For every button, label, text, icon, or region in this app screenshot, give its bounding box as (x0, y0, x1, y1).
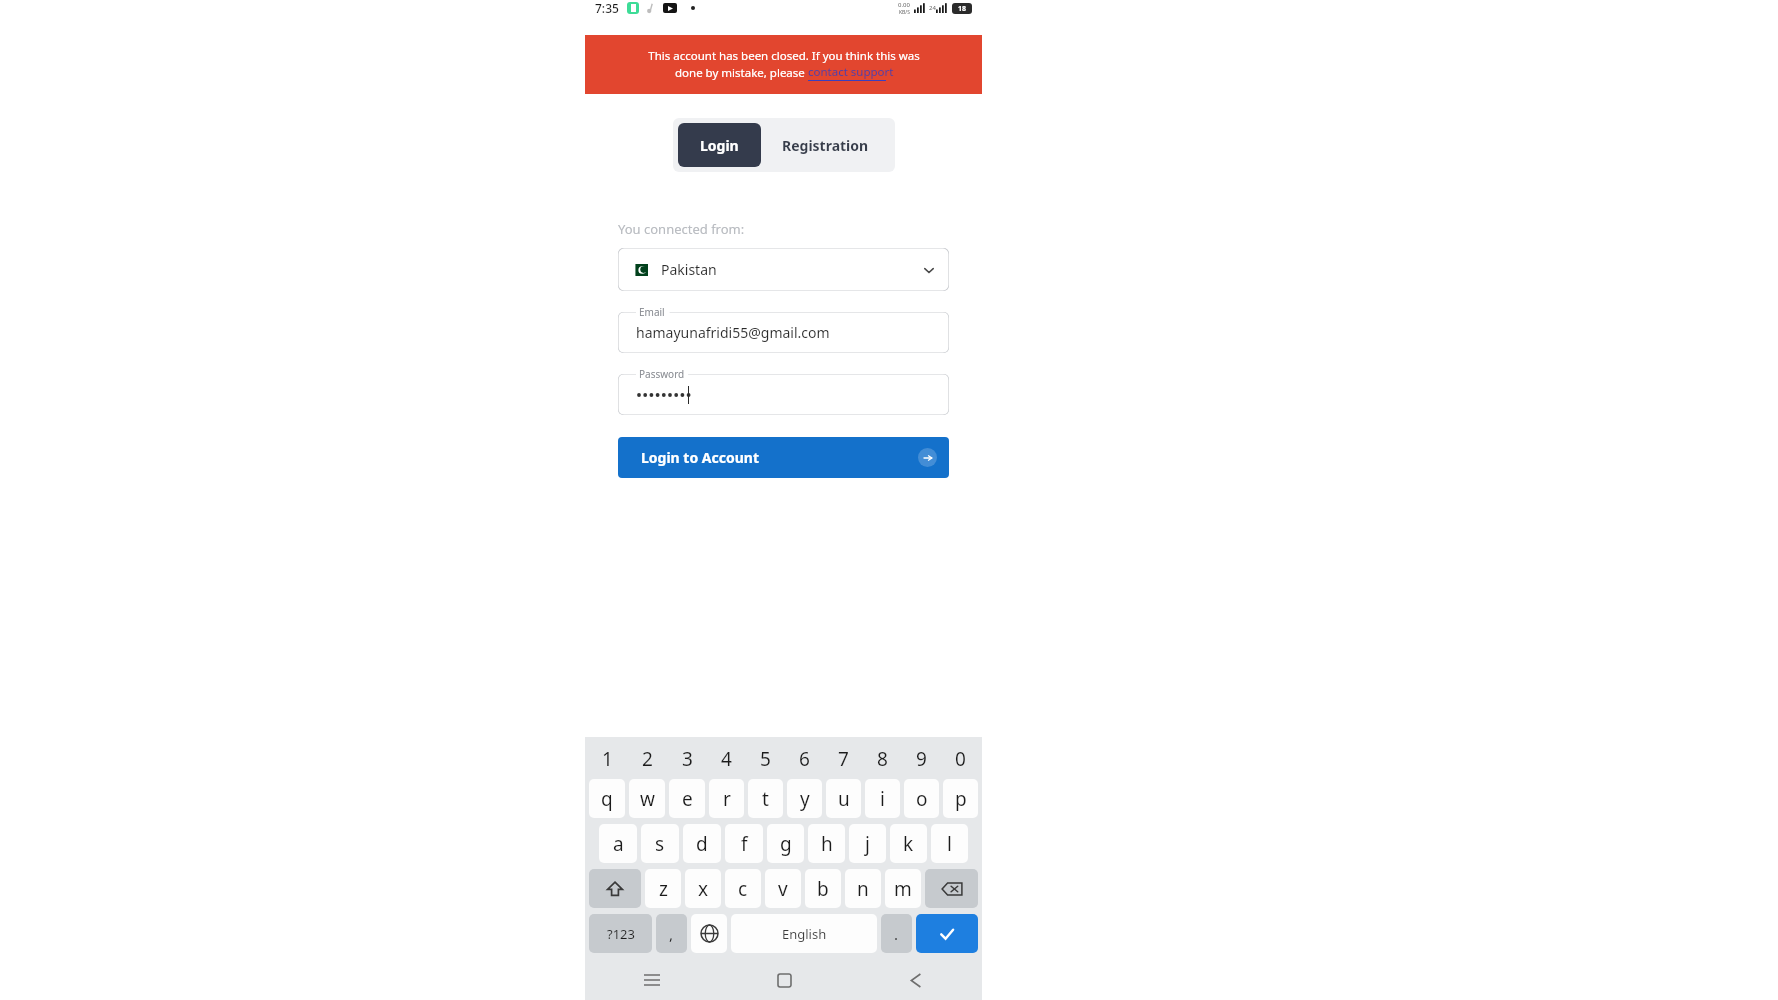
staticText: Registration (782, 136, 869, 155)
staticText: x (698, 876, 709, 902)
staticText: e (682, 786, 693, 812)
button[interactable]: Registration (761, 123, 890, 167)
button[interactable]: e (669, 779, 705, 818)
staticText: q (601, 786, 613, 812)
button[interactable]: Recents (585, 960, 718, 1000)
staticText: 7 (838, 746, 849, 772)
button[interactable]: Backspace (925, 869, 978, 908)
staticText: 8 (877, 746, 888, 772)
button[interactable]: l (931, 824, 968, 863)
staticText: l (947, 831, 952, 857)
button[interactable]: i (865, 779, 900, 818)
button[interactable]: 0 (941, 741, 980, 776)
staticText: r (723, 786, 731, 812)
button[interactable]: c (725, 869, 761, 908)
button[interactable]: 9 (902, 741, 941, 776)
staticText: s (655, 831, 665, 857)
staticText: Login (700, 136, 739, 155)
staticText: 9 (916, 746, 927, 772)
button[interactable]: 3 (667, 741, 707, 776)
button[interactable]: Pakistan (618, 248, 949, 291)
button[interactable]: k (890, 824, 927, 863)
button[interactable]: ?123 (589, 914, 652, 953)
button[interactable]: Login to Account (618, 437, 949, 478)
button[interactable]: 2 (627, 741, 667, 776)
button[interactable]: , (656, 914, 687, 953)
staticText: This account has been closed. If you thi… (648, 48, 920, 64)
staticText: Pakistan (661, 260, 717, 279)
staticText: y (800, 786, 810, 812)
button[interactable]: 1 (587, 741, 627, 776)
button[interactable]: Enter (916, 914, 978, 953)
staticText: j (865, 831, 870, 857)
staticText: 2 (642, 746, 653, 772)
button[interactable]: j (849, 824, 886, 863)
button[interactable] (618, 374, 949, 415)
staticText: , (669, 924, 674, 944)
button[interactable]: n (845, 869, 881, 908)
button[interactable]: t (748, 779, 783, 818)
button[interactable]: 4 (707, 741, 746, 776)
button[interactable]: g (767, 824, 804, 863)
button[interactable]: z (645, 869, 681, 908)
button[interactable]: s (641, 824, 679, 863)
staticText: 0 (955, 746, 966, 772)
button[interactable]: English (731, 914, 877, 953)
button[interactable]: b (805, 869, 841, 908)
button[interactable]: contact support (808, 64, 894, 81)
staticText: d (696, 831, 708, 857)
staticText: o (916, 786, 928, 812)
button[interactable]: x (685, 869, 721, 908)
staticText: contact support (808, 64, 894, 80)
button[interactable]: f (725, 824, 763, 863)
staticText: a (613, 831, 624, 857)
staticText: ?123 (607, 925, 635, 943)
staticText: 6 (799, 746, 810, 772)
staticText: Password (639, 367, 685, 381)
button[interactable]: hamayunafridi55@gmail.com (618, 312, 949, 353)
staticText: p (955, 786, 967, 812)
staticText: k (903, 831, 914, 857)
staticText: b (817, 876, 829, 902)
button[interactable]: d (683, 824, 721, 863)
button[interactable]: Login (678, 123, 761, 167)
staticText: n (857, 876, 869, 902)
staticText: 3 (682, 746, 693, 772)
staticText: KB/S (899, 9, 910, 16)
button[interactable]: 8 (863, 741, 902, 776)
button[interactable]: a (599, 824, 637, 863)
button[interactable]: q (589, 779, 625, 818)
staticText: You connected from: (618, 220, 745, 238)
button[interactable]: h (808, 824, 845, 863)
staticText: Login to Account (641, 448, 759, 467)
button[interactable]: r (709, 779, 744, 818)
button[interactable]: Home (718, 960, 850, 1000)
button[interactable]: 6 (785, 741, 824, 776)
staticText: hamayunafridi55@gmail.com (636, 323, 830, 342)
button[interactable]: Back (850, 960, 982, 1000)
button[interactable]: y (787, 779, 822, 818)
button[interactable]: . (881, 914, 912, 953)
staticText: t (762, 786, 769, 812)
staticText: 24 (929, 4, 936, 12)
button[interactable]: v (765, 869, 801, 908)
staticText: 18 (958, 4, 967, 14)
staticText: m (894, 876, 912, 902)
staticText: done by mistake, please (675, 65, 808, 81)
button[interactable]: w (629, 779, 665, 818)
button[interactable]: u (826, 779, 861, 818)
button[interactable]: m (885, 869, 921, 908)
button[interactable]: Shift (589, 869, 641, 908)
staticText: v (778, 876, 788, 902)
button[interactable]: o (904, 779, 939, 818)
button[interactable]: 5 (746, 741, 785, 776)
staticText: u (838, 786, 850, 812)
button[interactable]: Change language (691, 914, 727, 953)
button[interactable]: p (943, 779, 978, 818)
staticText: f (741, 831, 748, 857)
staticText: h (821, 831, 833, 857)
staticText: English (782, 925, 827, 943)
button[interactable]: 7 (824, 741, 863, 776)
staticText: Email (639, 305, 665, 319)
staticText: i (880, 786, 885, 812)
